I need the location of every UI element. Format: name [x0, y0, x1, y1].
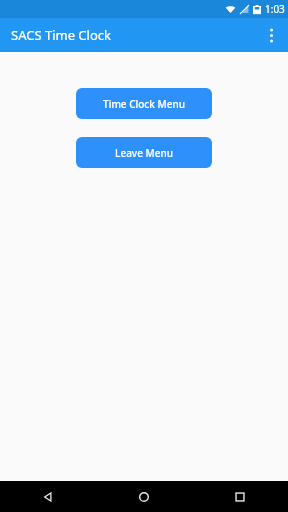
button[interactable]: Leave Menu [76, 137, 212, 168]
staticText: 1:03 [265, 2, 285, 16]
staticText: Time Clock Menu [103, 97, 185, 111]
staticText: SACS Time Clock [11, 26, 111, 44]
staticText: Leave Menu [115, 146, 173, 160]
button[interactable]: Recent apps [192, 481, 288, 512]
button[interactable]: More options [254, 18, 288, 52]
button[interactable]: Time Clock Menu [76, 88, 212, 119]
button[interactable]: Home [96, 481, 192, 512]
button[interactable]: Back [0, 481, 96, 512]
